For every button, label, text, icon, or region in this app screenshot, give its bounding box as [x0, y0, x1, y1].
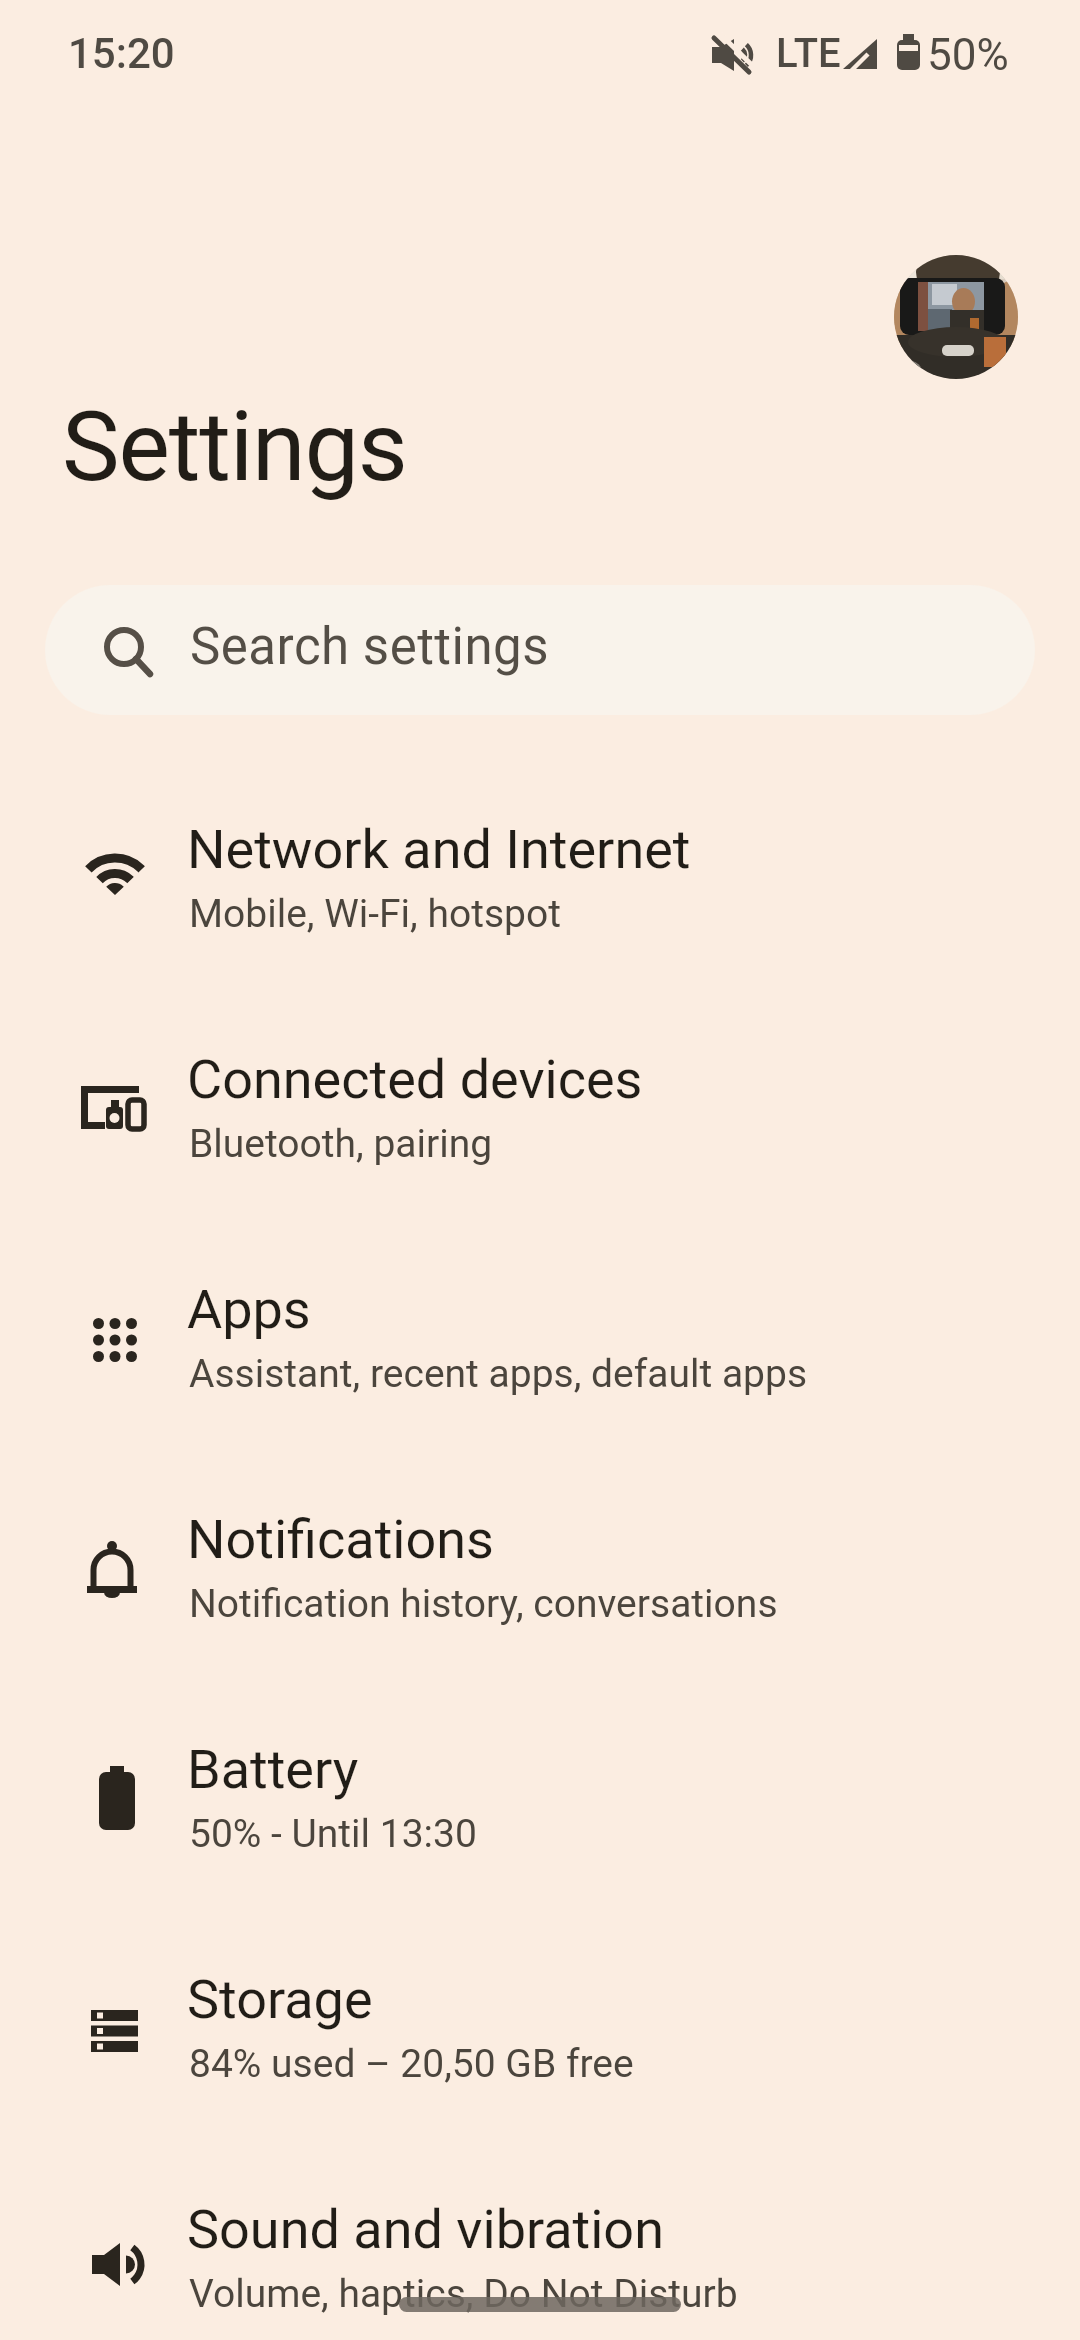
staticText: Search settings: [190, 617, 550, 677]
staticText: Sound and vibration: [187, 2198, 664, 2261]
staticText: Notifications: [187, 1508, 494, 1571]
staticText: Battery: [187, 1738, 359, 1801]
button[interactable]: Network and Internet: [0, 773, 1080, 988]
staticText: Volume, haptics, Do Not Disturb: [189, 2271, 738, 2317]
button[interactable]: Battery: [0, 1693, 1080, 1908]
button[interactable]: Sound and vibration: [0, 2153, 1080, 2340]
staticText: Assistant, recent apps, default apps: [189, 1351, 808, 1397]
staticText: 50%: [927, 29, 1009, 81]
button[interactable]: [894, 255, 1018, 379]
staticText: Connected devices: [187, 1048, 643, 1111]
staticText: Storage: [187, 1968, 373, 2031]
staticText: Settings: [62, 390, 407, 504]
button[interactable]: Storage: [0, 1923, 1080, 2138]
staticText: Mobile, Wi-Fi, hotspot: [189, 891, 561, 937]
staticText: Apps: [187, 1278, 311, 1341]
button[interactable]: Search settings: [45, 585, 1035, 715]
staticText: 84% used – 20,50 GB free: [189, 2041, 634, 2087]
staticText: LTE: [776, 30, 841, 77]
button[interactable]: Apps: [0, 1233, 1080, 1448]
staticText: 50% - Until 13:30: [189, 1811, 477, 1857]
staticText: Network and Internet: [187, 818, 691, 881]
staticText: Notification history, conversations: [189, 1581, 778, 1627]
staticText: Bluetooth, pairing: [189, 1121, 493, 1167]
button[interactable]: Notifications: [0, 1463, 1080, 1678]
button[interactable]: Connected devices: [0, 1003, 1080, 1218]
staticText: 15:20: [68, 29, 175, 78]
